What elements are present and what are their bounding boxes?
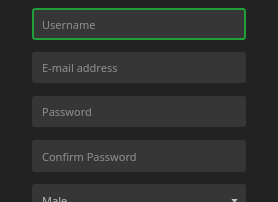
button[interactable]: Username <box>32 8 246 40</box>
staticText: E-mail address <box>42 60 118 75</box>
staticText: Confirm Password <box>42 149 137 164</box>
button[interactable]: Password <box>32 96 246 127</box>
other: Open gender dropdown <box>229 195 240 202</box>
staticText: Username <box>42 17 96 32</box>
button[interactable]: Confirm Password <box>32 140 246 172</box>
staticText: Male <box>42 193 68 202</box>
button[interactable]: Male <box>32 184 246 202</box>
button[interactable]: E-mail address <box>32 52 246 83</box>
staticText: Password <box>42 104 92 119</box>
